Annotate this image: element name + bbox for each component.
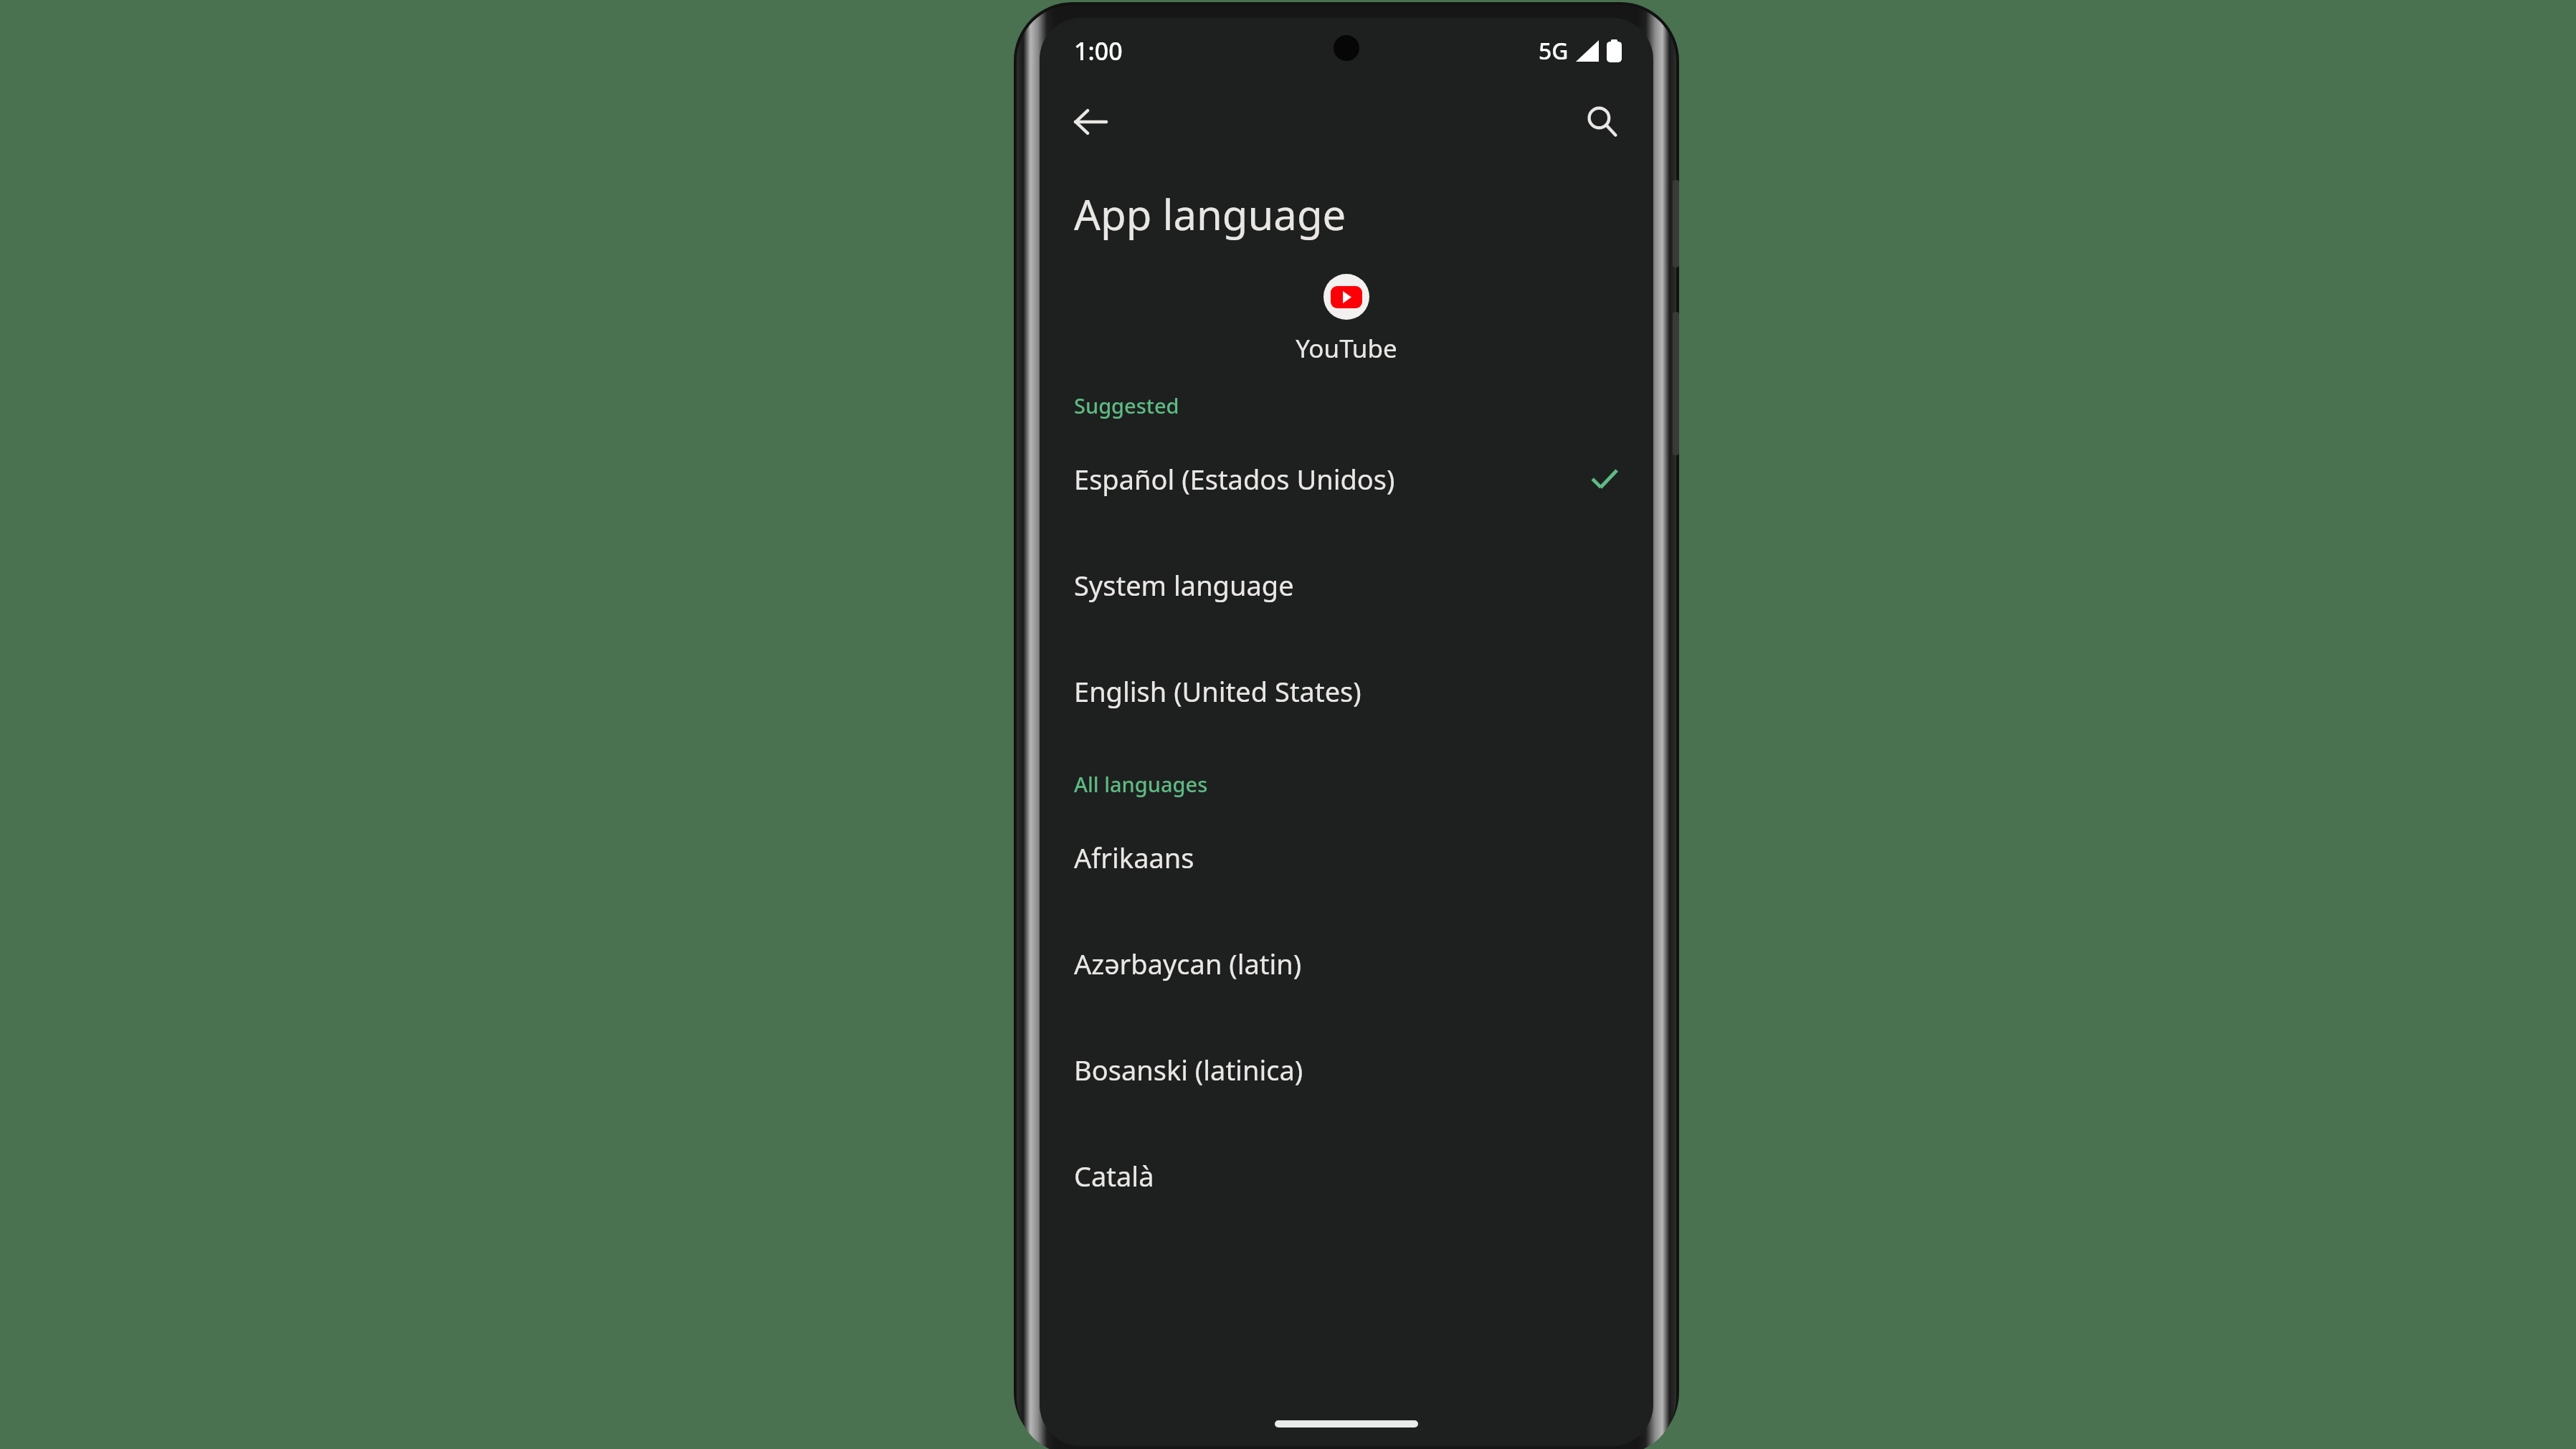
button[interactable]: English (United States) bbox=[1040, 638, 1653, 744]
button[interactable]: Azərbaycan (latin) bbox=[1040, 911, 1653, 1017]
button[interactable]: System language bbox=[1040, 532, 1653, 638]
button[interactable]: Back bbox=[1057, 88, 1124, 156]
staticText: 5G bbox=[1539, 35, 1569, 67]
staticText: English (United States) bbox=[1074, 673, 1361, 710]
staticText: App language bbox=[1074, 186, 1346, 242]
staticText: System language bbox=[1074, 566, 1294, 604]
staticText: Afrikaans bbox=[1074, 839, 1194, 876]
staticText: All languages bbox=[1074, 770, 1208, 798]
button[interactable]: Afrikaans bbox=[1040, 804, 1653, 911]
button[interactable]: Español (Estados Unidos) bbox=[1040, 426, 1653, 532]
button[interactable]: Bosanski (latinica) bbox=[1040, 1017, 1653, 1123]
staticText: Azərbaycan (latin) bbox=[1074, 945, 1302, 982]
button[interactable]: Search bbox=[1569, 88, 1636, 156]
staticText: Español (Estados Unidos) bbox=[1074, 460, 1395, 498]
staticText: 1:00 bbox=[1074, 34, 1123, 67]
button[interactable]: Català bbox=[1040, 1123, 1653, 1229]
staticText: Català bbox=[1074, 1157, 1154, 1194]
staticText: YouTube bbox=[1296, 331, 1397, 366]
staticText: Suggested bbox=[1074, 391, 1179, 419]
staticText: Bosanski (latinica) bbox=[1074, 1051, 1303, 1088]
